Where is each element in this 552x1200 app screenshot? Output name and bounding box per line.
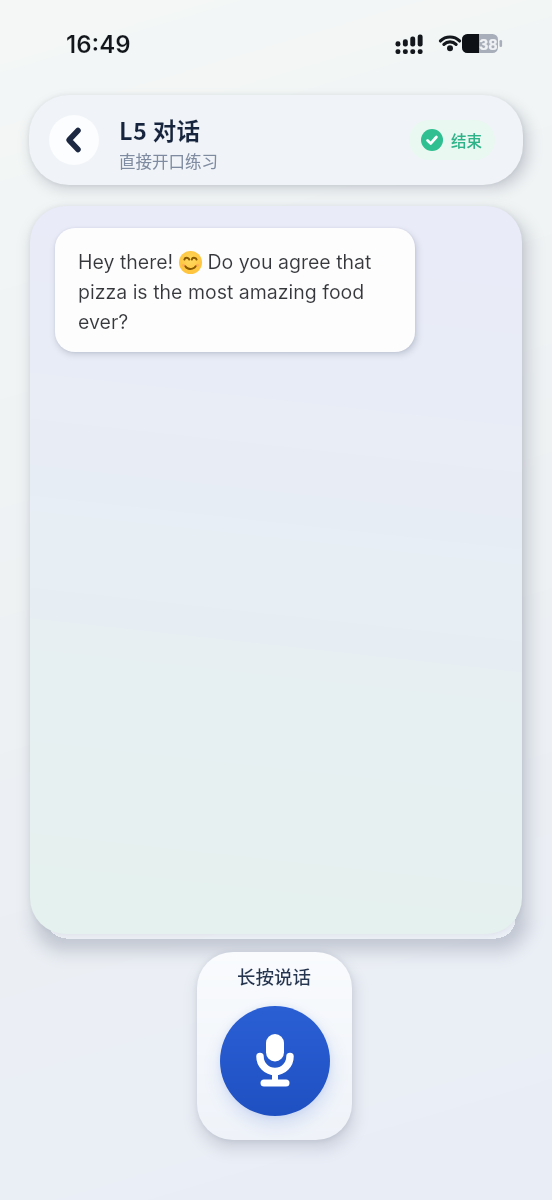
- staticText: ever?: [78, 310, 129, 334]
- staticText: 16:49: [66, 30, 131, 59]
- staticText: pizza is the most amazing food: [78, 280, 365, 304]
- button[interactable]: 结束: [409, 120, 495, 160]
- staticText: 直接开口练习: [119, 149, 218, 173]
- staticText: Do you agree that: [202, 250, 372, 274]
- staticText: 长按说话: [237, 963, 312, 990]
- staticText: L5 对话: [119, 113, 201, 147]
- staticText: 38: [479, 36, 498, 54]
- staticText: Hey there!: [78, 250, 179, 274]
- button[interactable]: [49, 115, 99, 165]
- button[interactable]: [220, 1006, 330, 1116]
- staticText: 结束: [451, 129, 483, 151]
